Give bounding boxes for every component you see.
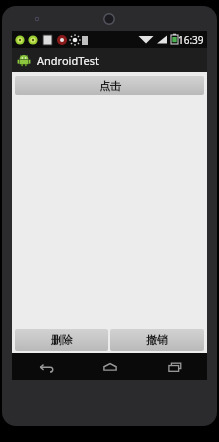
staticText: 16:39 xyxy=(178,33,204,47)
button[interactable]: Back xyxy=(12,353,77,380)
button[interactable]: 撤销 xyxy=(110,329,204,351)
staticText: 撤销 xyxy=(146,333,168,347)
button[interactable]: 点击 xyxy=(15,76,204,95)
staticText: 点击 xyxy=(99,79,121,93)
button[interactable]: 删除 xyxy=(15,329,108,351)
button[interactable]: Home xyxy=(77,353,142,380)
button[interactable]: Recent apps xyxy=(142,353,207,380)
staticText: AndroidTest xyxy=(37,53,99,68)
staticText: 删除 xyxy=(51,333,73,347)
